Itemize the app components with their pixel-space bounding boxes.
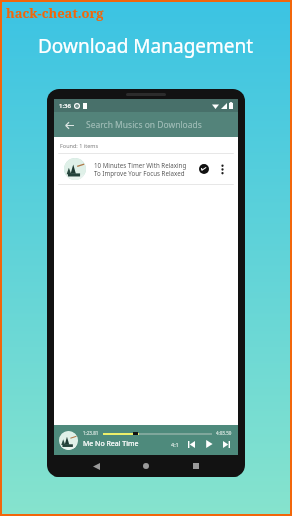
button[interactable]: Home [138, 458, 154, 474]
button[interactable]: Back [88, 458, 104, 474]
staticText: Found: 1 items [60, 142, 99, 149]
button[interactable]: Next [221, 439, 232, 450]
staticText: Download Management [38, 33, 254, 59]
staticText: To Improve Your Focus Relaxed [94, 169, 185, 177]
staticText: hack-cheat.org [6, 4, 104, 22]
button[interactable]: 10 Minutes Timer With Relaxing [58, 153, 234, 185]
button[interactable]: Downloaded [197, 162, 211, 176]
staticText: 1:23.81 [83, 430, 99, 436]
button[interactable]: Recent apps [188, 458, 204, 474]
button[interactable]: Previous [186, 439, 197, 450]
staticText: 4:1 [171, 441, 179, 448]
staticText: Search Musics on Downloads [86, 119, 202, 131]
button[interactable]: More options [216, 163, 228, 175]
staticText: 1:36 [59, 102, 71, 110]
staticText: Me No Real Time [83, 439, 171, 449]
staticText: 10 Minutes Timer With Relaxing [94, 161, 187, 169]
button[interactable]: Back [61, 117, 77, 133]
button[interactable]: 1:23.81 [54, 425, 238, 455]
button[interactable]: Play [203, 438, 215, 450]
staticText: 4:03.50 [216, 430, 232, 436]
